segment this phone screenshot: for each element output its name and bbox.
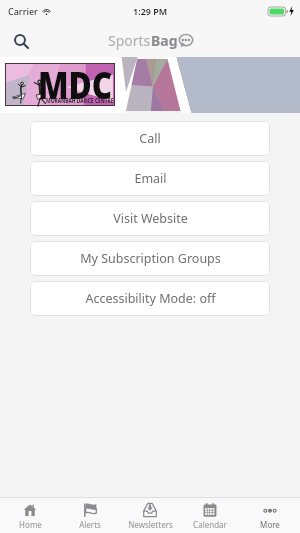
button[interactable]: Calendar	[180, 498, 240, 530]
staticText: MDC	[38, 59, 112, 104]
staticText: Newsletters	[128, 519, 173, 530]
staticText: Accessibility Mode: off	[85, 290, 216, 307]
staticText: Carrier	[8, 5, 38, 17]
button[interactable]: Email	[30, 161, 270, 196]
staticText: Bag	[151, 31, 178, 50]
button[interactable]: Newsletters	[120, 498, 180, 530]
staticText: Call	[139, 130, 161, 147]
staticText: More	[260, 519, 280, 530]
button[interactable]: Call	[30, 121, 270, 156]
staticText: Email	[134, 170, 167, 187]
staticText: Sports	[108, 31, 151, 50]
staticText: Alerts	[79, 519, 101, 530]
button[interactable]: Home	[0, 498, 60, 530]
button[interactable]: Alerts	[60, 498, 120, 530]
button[interactable]: Search	[8, 28, 34, 54]
staticText: My Subscription Groups	[80, 250, 221, 267]
staticText: Calendar	[193, 519, 227, 530]
button[interactable]: My Subscription Groups	[30, 241, 270, 276]
staticText: Home	[19, 519, 42, 530]
staticText: Visit Website	[113, 210, 188, 227]
staticText: 1:29 PM	[133, 5, 168, 17]
button[interactable]: More	[240, 498, 300, 530]
button[interactable]: Accessibility Mode: off	[30, 281, 270, 316]
staticText: MORANBAH DANCE CENTRE	[46, 96, 114, 106]
button[interactable]: Visit Website	[30, 201, 270, 236]
